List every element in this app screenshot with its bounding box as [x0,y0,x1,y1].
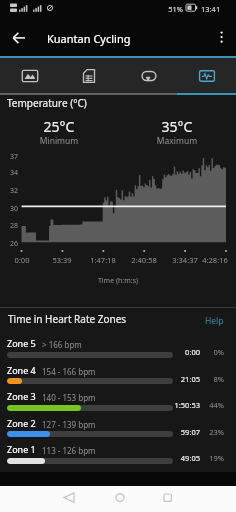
button[interactable]: Help [196,310,232,332]
staticText: Zone 5 [7,337,36,349]
button[interactable]: Home [104,486,137,512]
button[interactable] [0,412,236,439]
staticText: Time (h:m:s) [0,276,236,286]
staticText: 44% [190,400,224,410]
staticText: 1:47:18 [84,255,122,265]
staticText: 8% [190,374,224,384]
staticText: 4:28:16 [196,255,234,265]
button[interactable] [0,359,236,386]
button[interactable]: Laps [119,58,178,93]
button[interactable]: Recent apps [151,486,184,512]
staticText: > 166 bpm [42,339,82,350]
staticText: 140 - 153 bpm [42,392,96,403]
staticText: 2:40:58 [125,255,163,265]
staticText: 35°C [118,117,236,136]
staticText: 13:41 [201,4,221,14]
staticText: Maximum [118,135,236,147]
staticText: Minimum [0,135,118,147]
staticText: 25°C [0,117,118,136]
staticText: 26 [0,239,18,249]
staticText: Help [205,315,224,327]
staticText: 127 - 139 bpm [42,419,96,430]
staticText: 0:00 [152,347,200,357]
staticText: 23% [190,427,224,437]
button[interactable]: Map [0,58,59,93]
staticText: Zone 4 [7,364,36,376]
staticText: Zone 2 [7,417,36,429]
staticText: 0% [190,347,224,357]
staticText: 154 - 166 bpm [42,366,96,377]
staticText: 30 [0,204,18,214]
button[interactable]: Statistics [59,58,118,93]
staticText: Time in Heart Rate Zones [8,312,127,326]
staticText: 37 [0,152,18,162]
button[interactable] [0,332,236,359]
staticText: 59:07 [152,427,200,437]
staticText: 34 [0,168,18,178]
button[interactable] [0,385,236,412]
button[interactable]: Sensors [177,58,236,93]
staticText: 28 [0,221,18,231]
staticText: Zone 1 [7,443,36,455]
staticText: 1:50:53 [152,400,200,410]
staticText: 51% [166,4,183,14]
button[interactable]: More options [210,24,234,48]
staticText: Kuantan Cycling [47,31,131,46]
button[interactable]: Back [52,486,85,512]
staticText: Temperature (°C) [7,96,87,110]
staticText: 113 - 126 bpm [42,445,96,456]
staticText: 49:05 [152,453,200,463]
button[interactable] [0,438,236,465]
staticText: 21:05 [152,374,200,384]
staticText: 3:34:37 [166,255,204,265]
staticText: 53:39 [43,255,81,265]
staticText: 0:00 [3,255,41,265]
staticText: 32 [0,186,18,196]
staticText: Zone 3 [7,390,36,402]
staticText: 19% [190,453,224,463]
button[interactable]: Navigate up [7,24,31,48]
